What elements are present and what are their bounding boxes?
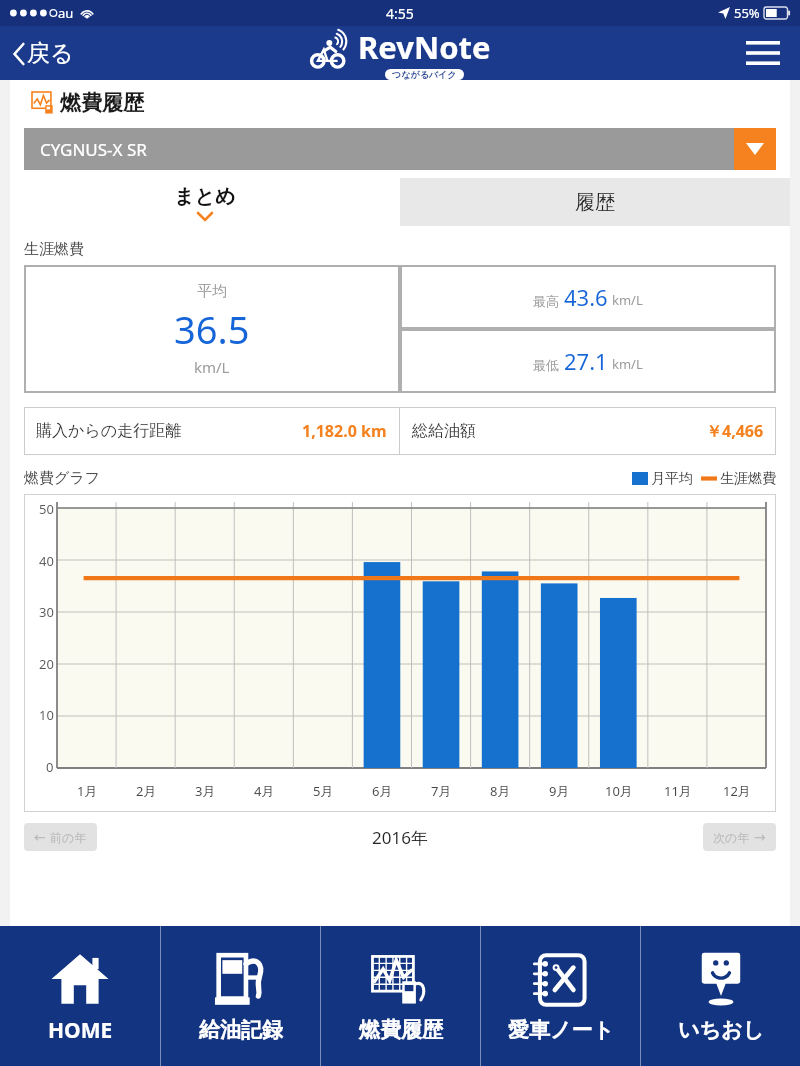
- staticText: 2月: [136, 782, 157, 800]
- button[interactable]: 購入からの走行距離: [24, 407, 399, 455]
- staticText: ←: [34, 829, 46, 845]
- staticText: 36.5: [174, 303, 250, 355]
- staticText: 6月: [372, 782, 393, 800]
- staticText: 次の年: [713, 830, 750, 845]
- button[interactable]: まとめ: [10, 178, 400, 226]
- button[interactable]: 最低: [400, 329, 776, 393]
- staticText: km/L: [612, 291, 643, 309]
- staticText: km/L: [612, 355, 643, 373]
- staticText: 9月: [549, 782, 570, 800]
- staticText: 戻る: [27, 39, 74, 68]
- staticText: CYGNUS-X SR: [40, 138, 147, 161]
- staticText: 前の年: [50, 830, 87, 845]
- staticText: 4:55: [386, 4, 414, 23]
- staticText: 50: [39, 500, 54, 518]
- staticText: 0: [46, 758, 54, 776]
- staticText: 3月: [195, 782, 216, 800]
- staticText: 給油記録: [199, 1017, 283, 1043]
- staticText: いちおし: [678, 1017, 764, 1043]
- button[interactable]: 戻る: [8, 33, 80, 74]
- button[interactable]: 燃費履歴: [321, 926, 480, 1066]
- staticText: 1月: [77, 782, 98, 800]
- staticText: 生涯燃費: [720, 470, 776, 488]
- staticText: 20: [39, 655, 54, 673]
- staticText: 8月: [490, 782, 511, 800]
- button[interactable]: HOME: [0, 926, 160, 1066]
- button[interactable]: 愛車ノート: [481, 926, 640, 1066]
- button[interactable]: ←: [24, 823, 97, 851]
- staticText: 履歴: [575, 190, 615, 215]
- staticText: →: [754, 829, 766, 845]
- staticText: 愛車ノート: [508, 1017, 614, 1043]
- staticText: 7月: [431, 782, 452, 800]
- button[interactable]: CYGNUS-X SR: [24, 128, 776, 170]
- staticText: 11月: [664, 782, 692, 800]
- staticText: 最低: [533, 357, 559, 373]
- button[interactable]: 履歴: [400, 178, 790, 226]
- button[interactable]: 総給油額: [400, 407, 776, 455]
- staticText: 27.1: [564, 346, 608, 376]
- staticText: au: [58, 4, 74, 22]
- button[interactable]: いちおし: [641, 926, 800, 1066]
- staticText: 生涯燃費: [24, 240, 84, 259]
- staticText: 月平均: [651, 470, 693, 488]
- staticText: 12月: [723, 782, 751, 800]
- button[interactable]: 平均: [24, 265, 400, 393]
- staticText: 平均: [197, 282, 227, 301]
- staticText: ￥4,466: [706, 420, 764, 442]
- staticText: 燃費グラフ: [24, 469, 101, 488]
- staticText: まとめ: [174, 184, 236, 209]
- staticText: 最高: [533, 293, 559, 309]
- staticText: 10: [39, 706, 54, 724]
- staticText: 2016年: [372, 826, 428, 849]
- staticText: 4月: [254, 782, 275, 800]
- staticText: 1,182.0 km: [302, 420, 387, 442]
- staticText: 燃費履歴: [60, 90, 144, 116]
- staticText: 10月: [605, 782, 633, 800]
- staticText: km/L: [194, 357, 230, 377]
- staticText: 30: [39, 603, 54, 621]
- button[interactable]: 給油記録: [161, 926, 320, 1066]
- staticText: 55%: [734, 4, 760, 22]
- staticText: HOME: [48, 1016, 113, 1045]
- staticText: 5月: [313, 782, 334, 800]
- staticText: 購入からの走行距離: [36, 421, 182, 441]
- staticText: RevNote: [358, 26, 491, 68]
- button[interactable]: 次の年: [703, 823, 776, 851]
- staticText: 40: [39, 552, 54, 570]
- staticText: 総給油額: [412, 421, 476, 441]
- staticText: つながるバイク: [392, 69, 457, 80]
- button[interactable]: Menu: [738, 33, 788, 73]
- button[interactable]: 最高: [400, 265, 776, 329]
- staticText: 燃費履歴: [359, 1017, 443, 1043]
- staticText: 43.6: [564, 282, 608, 312]
